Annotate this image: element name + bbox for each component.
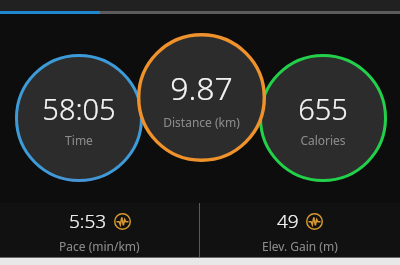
button[interactable]: 49 bbox=[200, 203, 400, 258]
staticText: Elev. Gain (m) bbox=[262, 238, 338, 254]
staticText: 5:53 bbox=[69, 208, 107, 234]
button[interactable]: Calories 655 bbox=[259, 54, 387, 182]
staticText: Distance (km) bbox=[163, 114, 240, 130]
other: Heart rate source bbox=[306, 213, 323, 230]
staticText: Pace (min/km) bbox=[59, 238, 140, 254]
button[interactable]: 5:53 bbox=[0, 203, 199, 258]
other: Heart rate source bbox=[114, 213, 131, 230]
staticText: Time bbox=[65, 132, 93, 148]
button[interactable]: Time 58:05 bbox=[15, 54, 143, 182]
button[interactable]: Distance 9.87 km bbox=[137, 33, 266, 162]
staticText: 58:05 bbox=[42, 89, 116, 128]
staticText: 655 bbox=[298, 89, 348, 128]
staticText: Calories bbox=[300, 132, 346, 148]
staticText: 49 bbox=[277, 208, 299, 234]
staticText: 9.87 bbox=[170, 66, 233, 110]
